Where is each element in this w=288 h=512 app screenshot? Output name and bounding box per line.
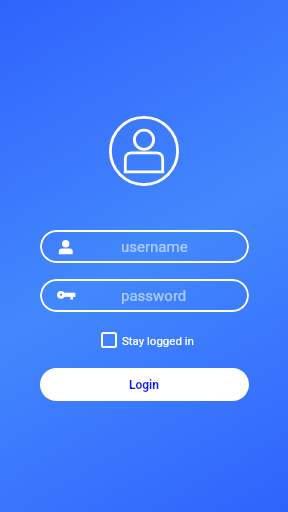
other: Password bbox=[57, 288, 77, 304]
staticText: Login bbox=[129, 378, 160, 392]
button[interactable]: Password bbox=[40, 279, 249, 312]
button[interactable]: Username bbox=[40, 230, 249, 263]
button[interactable]: Login bbox=[40, 368, 249, 401]
staticText: username bbox=[121, 238, 188, 256]
staticText: password bbox=[121, 287, 187, 305]
button[interactable]: Stay logged in bbox=[97, 328, 198, 352]
other: Username bbox=[57, 239, 77, 255]
staticText: Stay logged in bbox=[122, 334, 194, 347]
